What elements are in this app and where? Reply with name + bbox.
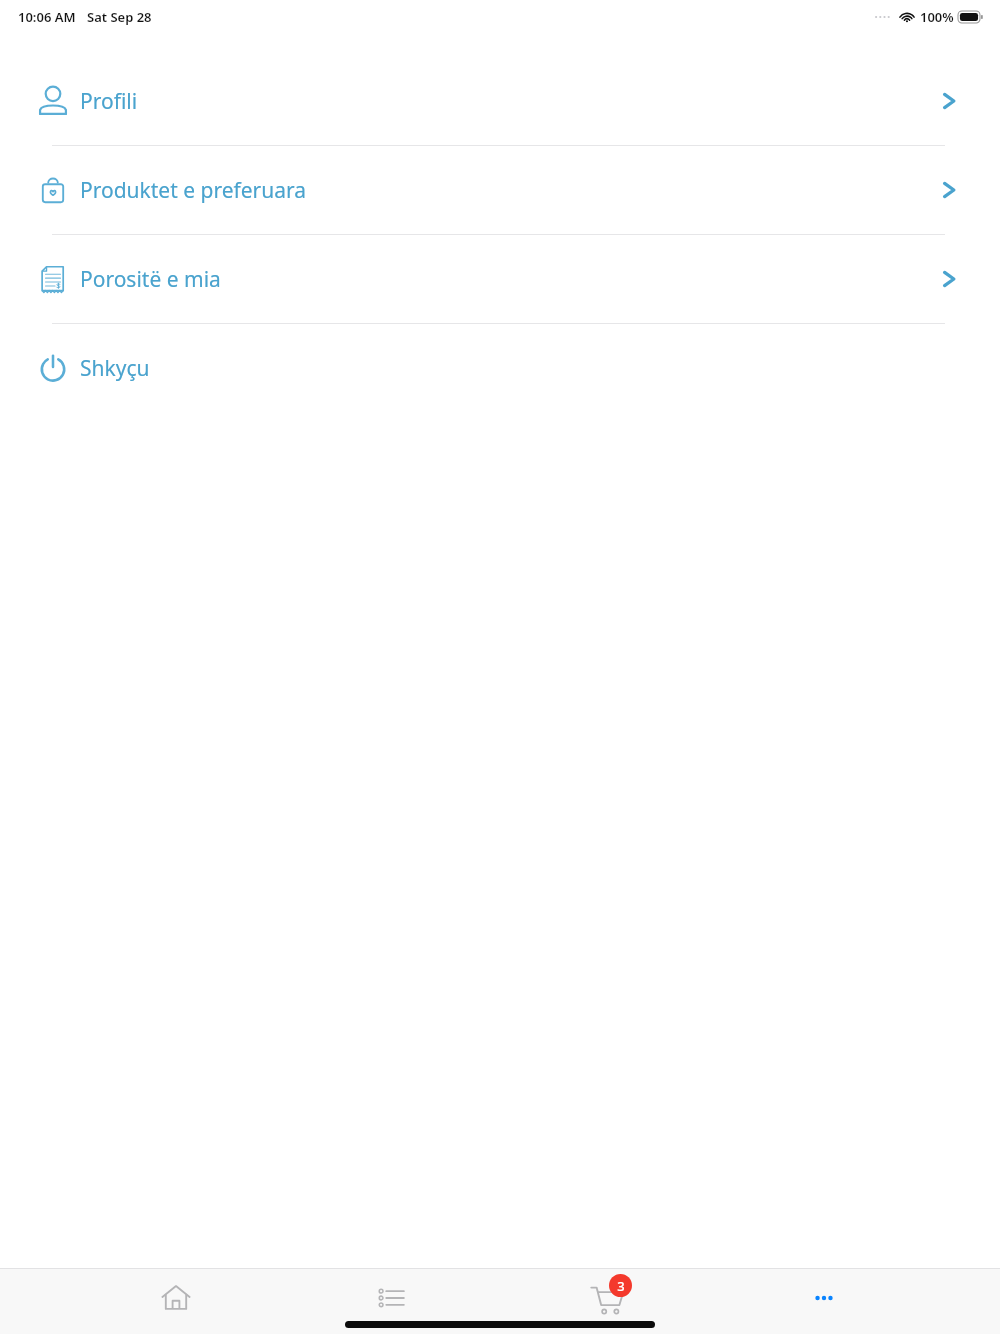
staticText: 10:06 AM [18,8,76,26]
button[interactable]: Profili [0,57,1000,145]
button[interactable]: Produktet e preferuara [0,146,1000,234]
staticText: Produktet e preferuara [80,176,307,205]
staticText: Shkyçu [80,354,150,383]
staticText: 100% [920,8,954,26]
button[interactable]: More [784,1274,864,1330]
staticText: 3 [617,1277,625,1295]
button[interactable]: Porositë e mia [0,235,1000,323]
button[interactable]: Cart, 3 items [568,1274,648,1330]
staticText: Profili [80,87,138,116]
button[interactable]: Home [136,1274,216,1330]
button[interactable]: Categories [352,1274,432,1330]
staticText: Porositë e mia [80,265,221,294]
staticText: Sat Sep 28 [87,8,152,26]
button[interactable]: Shkyçu [0,324,1000,412]
